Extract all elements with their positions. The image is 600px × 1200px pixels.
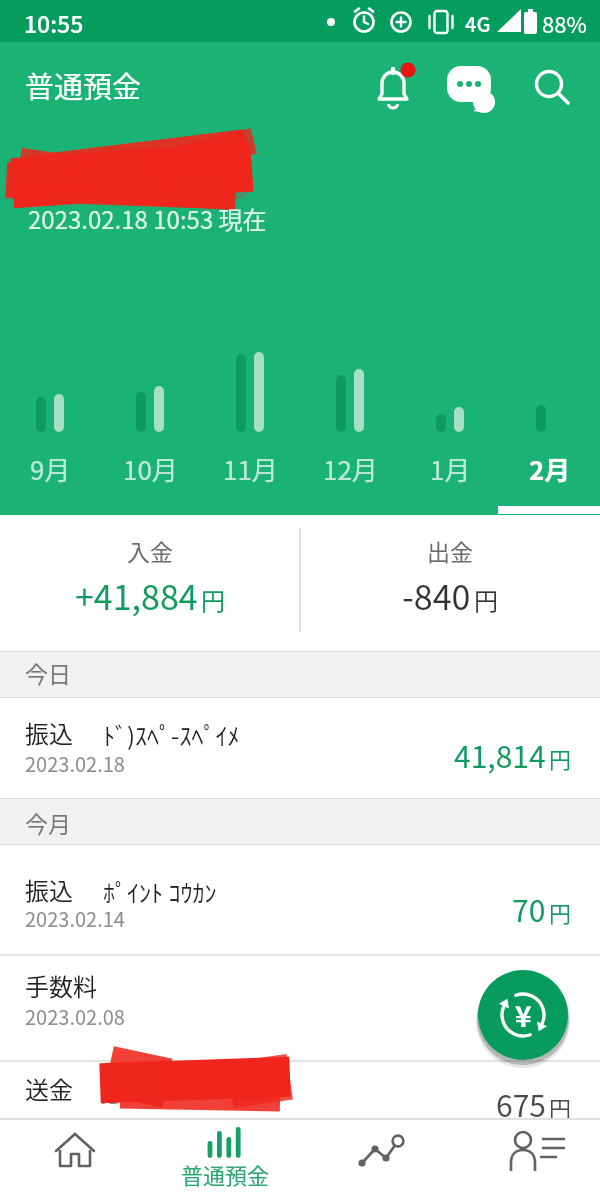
staticText: 10:55 <box>24 6 84 39</box>
staticText: 入金 <box>127 534 173 564</box>
staticText: 2023.02.14 <box>25 904 125 933</box>
staticText: 普通預金 <box>181 1158 270 1190</box>
button[interactable] <box>369 64 417 112</box>
staticText: ID <box>100 1076 124 1111</box>
staticText: ¥ <box>515 995 532 1036</box>
button[interactable] <box>0 1119 150 1200</box>
staticText: ﾄﾞ)ｽﾍﾟ-ｽﾍﾟｲﾒ <box>103 717 240 752</box>
staticText: 今日 <box>25 656 71 689</box>
button[interactable]: 普通預金 <box>150 1119 300 1200</box>
staticText: 9月 <box>30 450 71 486</box>
staticText: 11月 <box>223 450 278 486</box>
staticText: 88% <box>542 7 587 39</box>
staticText: 70 <box>512 887 546 930</box>
button[interactable] <box>0 698 600 798</box>
staticText: 送金 <box>25 1071 73 1106</box>
staticText: 675 <box>496 1082 546 1125</box>
staticText: 2023.02.08 <box>25 1002 125 1031</box>
button[interactable]: ¥ <box>478 970 568 1060</box>
staticText: 円 <box>549 742 572 774</box>
staticText: 12月 <box>323 450 378 486</box>
staticText: 2月 <box>529 450 571 486</box>
staticText: 2023.02.18 <box>25 749 125 778</box>
staticText: 円 <box>549 1091 572 1123</box>
staticText: 円 <box>474 582 498 617</box>
staticText: ﾎﾟｲﾝﾄ ｺｳｶﾝ <box>103 874 217 909</box>
staticText: 2023.02.18 10:53 現在 <box>28 201 267 236</box>
button[interactable] <box>446 64 494 112</box>
button[interactable] <box>0 956 600 1062</box>
staticText: -840 <box>402 571 471 620</box>
button[interactable] <box>0 845 600 956</box>
staticText: 今月 <box>25 806 71 839</box>
staticText: 41,814 <box>454 733 546 776</box>
button[interactable] <box>528 64 576 112</box>
staticText: 普通預金 <box>25 64 142 106</box>
staticText: 4G <box>465 9 491 38</box>
staticText: 出金 <box>427 534 473 564</box>
button[interactable] <box>300 1119 450 1200</box>
staticText: 円 <box>201 582 225 617</box>
staticText: 振込 <box>25 715 73 750</box>
staticText: 手数料 <box>25 968 97 1003</box>
staticText: 円 <box>549 896 572 928</box>
button[interactable] <box>450 1119 600 1200</box>
staticText: 1月 <box>430 450 471 486</box>
staticText: 10月 <box>123 450 178 486</box>
staticText: 振込 <box>25 872 73 907</box>
button[interactable] <box>0 1062 600 1118</box>
staticText: +41,884 <box>75 571 198 620</box>
